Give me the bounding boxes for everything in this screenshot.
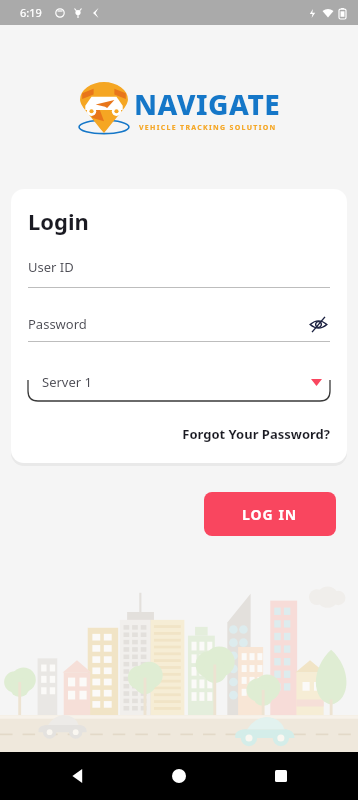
staticText: Password — [28, 315, 306, 333]
staticText: 6:19 — [20, 5, 42, 20]
button[interactable]: Show password — [306, 312, 330, 336]
button[interactable]: Recent apps — [257, 752, 305, 800]
staticText: Server 1 — [42, 373, 92, 391]
button[interactable]: User ID — [28, 258, 330, 288]
staticText: VEHICLE TRACKING SOLUTION — [139, 123, 277, 133]
button[interactable]: Home — [155, 752, 203, 800]
button[interactable]: Password — [28, 312, 330, 342]
button[interactable]: LOG IN — [204, 492, 336, 536]
button[interactable]: Forgot Your Password? — [182, 425, 330, 443]
staticText: User ID — [28, 258, 74, 276]
staticText: NAVIGATE — [134, 85, 281, 123]
staticText: Login — [28, 206, 89, 236]
button[interactable]: Server 1 — [28, 363, 330, 401]
staticText: LOG IN — [242, 505, 298, 524]
button[interactable]: Back — [54, 752, 102, 800]
